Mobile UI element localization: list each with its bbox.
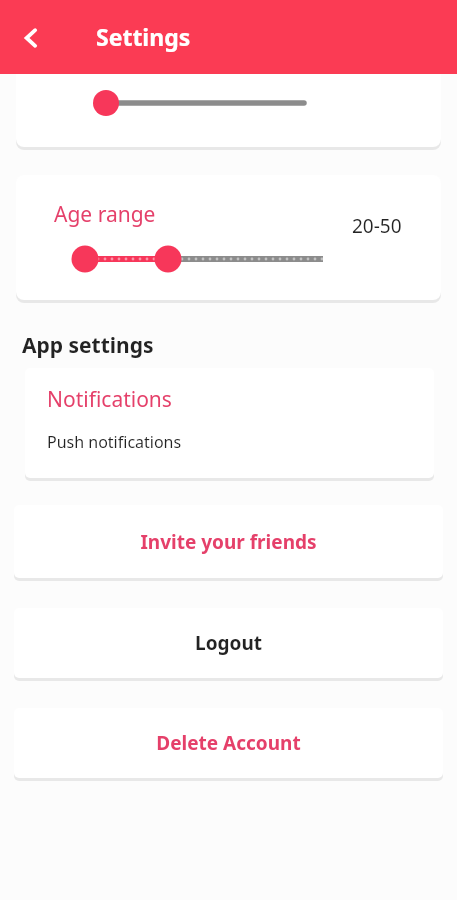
button[interactable]: Age range [16, 175, 441, 300]
staticText: Age range [54, 200, 156, 229]
staticText: Invite your friends [140, 529, 317, 555]
staticText: Notifications [47, 385, 172, 414]
staticText: 20 Km. [262, 58, 324, 77]
button[interactable]: Back [8, 15, 53, 60]
button[interactable]: 20 Km. [16, 58, 441, 147]
button[interactable]: Notifications [25, 368, 434, 478]
button[interactable]: Logout [14, 608, 443, 678]
staticText: Delete Account [156, 730, 301, 756]
button[interactable]: Invite your friends [14, 505, 443, 578]
staticText: Logout [195, 630, 262, 656]
staticText: Push notifications [47, 431, 182, 453]
staticText: App settings [22, 331, 154, 360]
staticText: 20-50 [352, 213, 402, 239]
button[interactable]: Delete Account [14, 708, 443, 778]
staticText: Settings [96, 21, 191, 52]
